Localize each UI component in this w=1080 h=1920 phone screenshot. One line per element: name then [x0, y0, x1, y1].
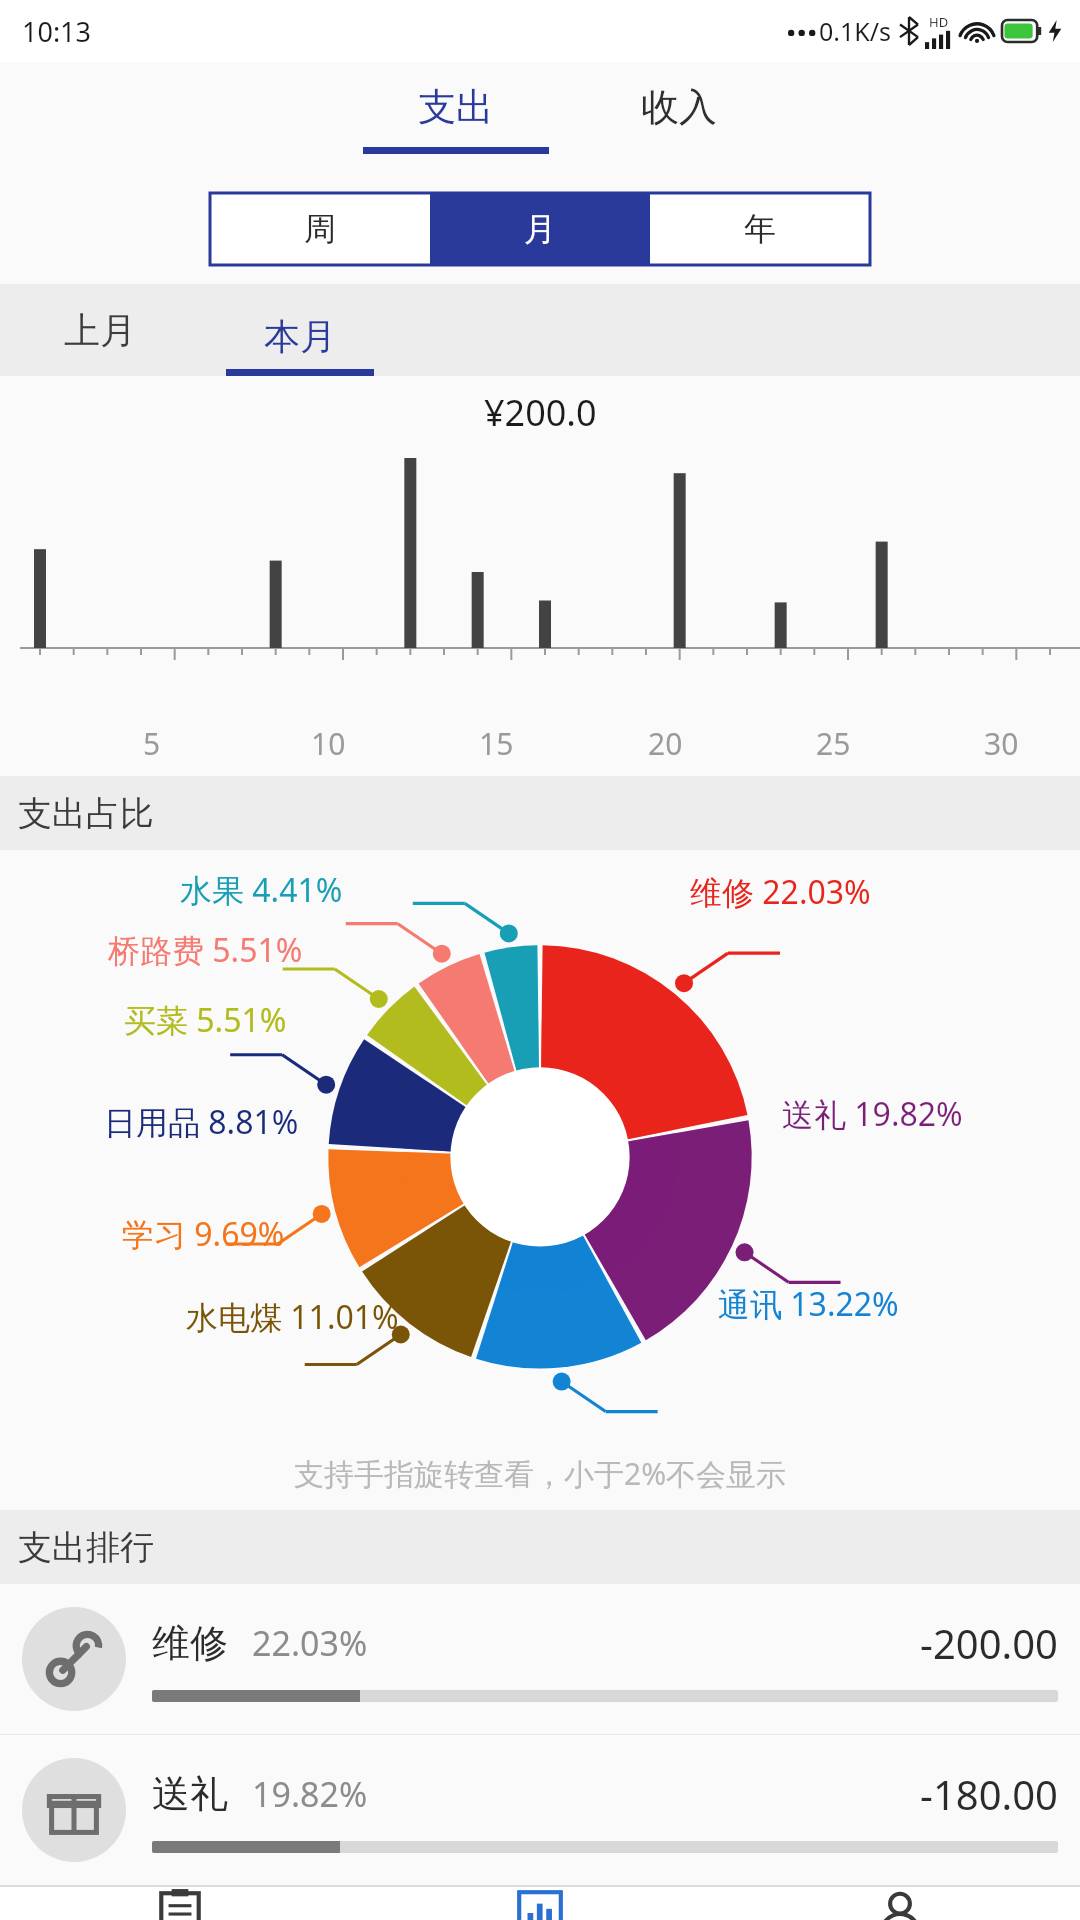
staticText: ¥200.0: [484, 388, 597, 437]
staticText: 月: [524, 209, 556, 249]
staticText: 水电煤 11.01%: [186, 1295, 399, 1339]
button[interactable]: 支出: [337, 83, 575, 154]
staticText: 学习 9.69%: [122, 1212, 285, 1256]
button[interactable]: 上月: [0, 284, 200, 376]
button[interactable]: 月: [430, 193, 650, 265]
staticText: 支出: [418, 83, 494, 131]
staticText: 20: [648, 723, 683, 764]
staticText: 维修 22.03%: [690, 870, 871, 914]
staticText: 年: [744, 209, 776, 249]
staticText: 维修: [152, 1619, 228, 1667]
staticText: 25: [816, 723, 851, 764]
staticText: 送礼: [152, 1770, 228, 1818]
button[interactable]: 周: [210, 193, 430, 265]
button[interactable]: 年: [650, 193, 870, 265]
staticText: 通讯 13.22%: [718, 1282, 899, 1326]
staticText: 支出排行: [18, 1526, 154, 1569]
staticText: 22.03%: [252, 1620, 368, 1666]
staticText: 日用品 8.81%: [104, 1100, 299, 1144]
button[interactable]: 统计: [360, 1887, 720, 1920]
button[interactable]: 收入: [615, 83, 743, 131]
staticText: 10: [311, 723, 346, 764]
staticText: 送礼 19.82%: [782, 1092, 963, 1136]
button[interactable]: 维修: [0, 1584, 1080, 1734]
staticText: 10:13: [22, 13, 92, 50]
staticText: 收入: [641, 83, 717, 131]
staticText: 买菜 5.51%: [124, 998, 287, 1042]
staticText: 30: [984, 723, 1019, 764]
button[interactable]: 本月: [200, 284, 400, 376]
staticText: 水果 4.41%: [180, 868, 343, 912]
staticText: 本月: [264, 314, 336, 359]
staticText: 19.82%: [252, 1771, 368, 1817]
button[interactable]: 我的: [720, 1887, 1080, 1920]
staticText: 0.1K/s: [819, 14, 892, 48]
button[interactable]: 送礼: [0, 1735, 1080, 1885]
staticText: -180.00: [920, 1767, 1058, 1821]
staticText: HD: [929, 13, 949, 31]
staticText: 桥路费 5.51%: [108, 928, 303, 972]
staticText: 支持手指旋转查看，小于2%不会显示: [294, 1453, 787, 1494]
button[interactable]: 账单: [0, 1887, 360, 1920]
staticText: 周: [304, 209, 336, 249]
staticText: -200.00: [920, 1616, 1058, 1670]
staticText: 5: [143, 723, 161, 764]
staticText: 上月: [64, 308, 136, 353]
staticText: 支出占比: [18, 792, 154, 835]
staticText: 15: [479, 723, 514, 764]
